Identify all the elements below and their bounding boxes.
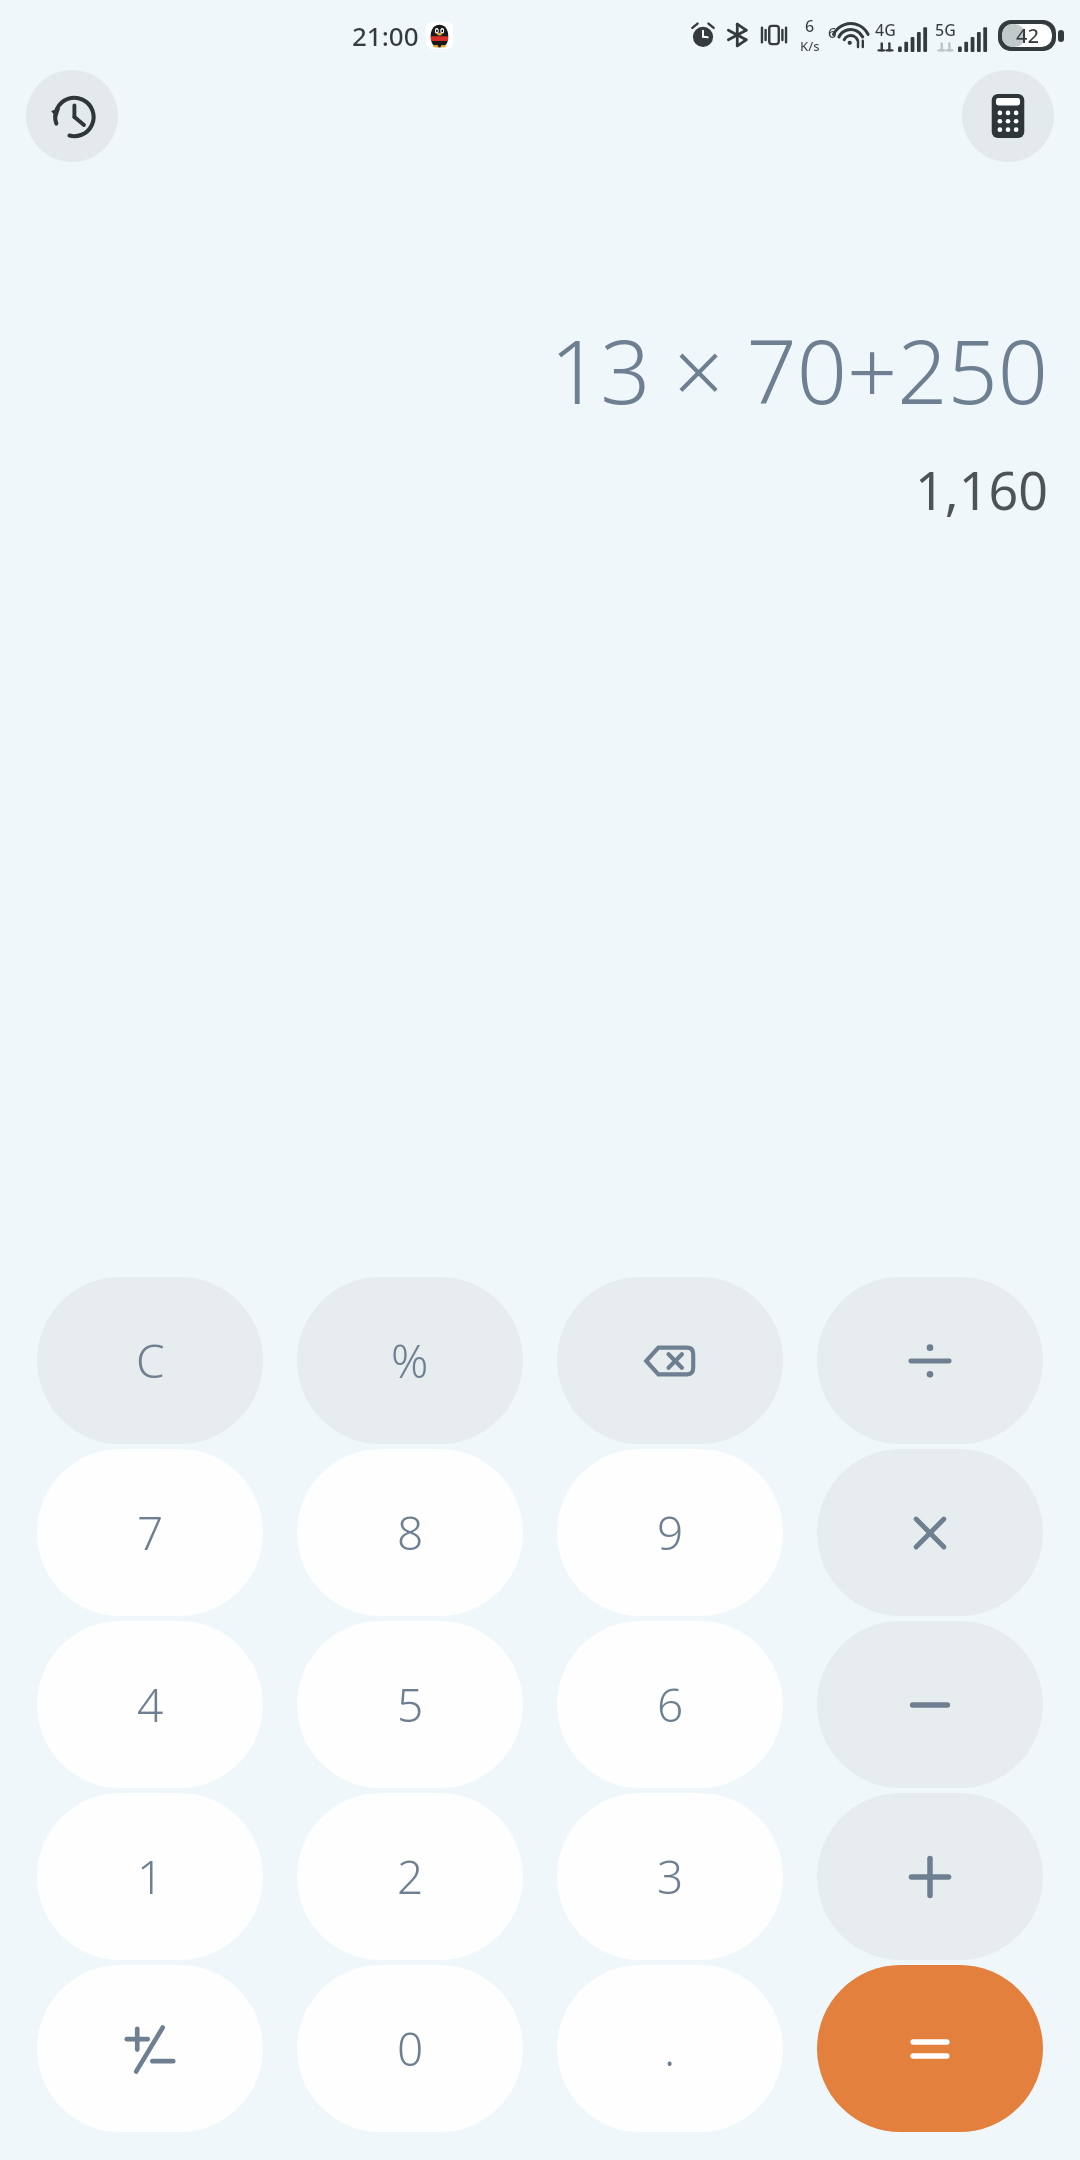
staticText: 4 (137, 1673, 164, 1736)
button[interactable]: 6 (557, 1621, 783, 1788)
staticText: 4G (875, 19, 896, 41)
button[interactable]: 5 (297, 1621, 523, 1788)
staticText: 0 (397, 2017, 424, 2080)
button[interactable]: History (26, 70, 118, 162)
button[interactable]: 4 (37, 1621, 263, 1788)
staticText: % (391, 1329, 429, 1392)
staticText: 6 (805, 15, 815, 37)
button[interactable]: Multiply (817, 1449, 1043, 1616)
button[interactable]: Plus (817, 1793, 1043, 1960)
staticText: 1,160 (915, 454, 1048, 525)
button[interactable]: Toggle sign (37, 1965, 263, 2132)
staticText: 8 (397, 1501, 424, 1564)
staticText: 7 (137, 1501, 164, 1564)
staticText: 3 (657, 1845, 684, 1908)
staticText: 5 (397, 1673, 424, 1736)
button[interactable]: 3 (557, 1793, 783, 1960)
button[interactable]: 0 (297, 1965, 523, 2132)
button[interactable]: 2 (297, 1793, 523, 1960)
button[interactable]: 7 (37, 1449, 263, 1616)
staticText: C (136, 1329, 165, 1392)
button[interactable]: Backspace (557, 1277, 783, 1444)
button[interactable]: C (37, 1277, 263, 1444)
staticText: 6 (828, 22, 837, 42)
button[interactable]: 8 (297, 1449, 523, 1616)
staticText: 21:00 (352, 18, 419, 53)
staticText: 5G (935, 19, 956, 41)
button[interactable]: Minus (817, 1621, 1043, 1788)
button[interactable]: % (297, 1277, 523, 1444)
staticText: 13 × 70+250 (550, 310, 1048, 430)
staticText: K/s (800, 37, 820, 55)
button[interactable]: Scientific calculator (962, 70, 1054, 162)
button[interactable]: . (557, 1965, 783, 2132)
staticText: 9 (657, 1501, 684, 1564)
button[interactable]: Divide (817, 1277, 1043, 1444)
button[interactable]: 1 (37, 1793, 263, 1960)
staticText: 2 (397, 1845, 424, 1908)
button[interactable]: 9 (557, 1449, 783, 1616)
staticText: 42 (1016, 22, 1039, 49)
staticText: 6 (657, 1673, 684, 1736)
staticText: . (664, 2017, 676, 2080)
button[interactable]: Equals (817, 1965, 1043, 2132)
staticText: 1 (137, 1845, 164, 1908)
